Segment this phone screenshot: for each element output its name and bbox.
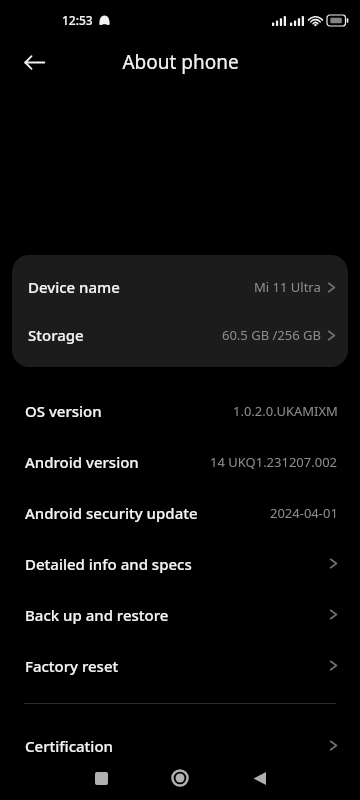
button[interactable]: Android version bbox=[0, 436, 360, 487]
staticText: 12:53 bbox=[62, 12, 93, 28]
button[interactable]: Detailed info and specs bbox=[0, 538, 360, 589]
button[interactable]: Android security update bbox=[0, 487, 360, 538]
staticText: Storage bbox=[28, 325, 84, 345]
button[interactable]: Factory reset bbox=[0, 640, 360, 691]
button[interactable]: Recents bbox=[71, 756, 131, 800]
button[interactable]: Back bbox=[229, 756, 289, 800]
staticText: Android security update bbox=[25, 503, 198, 523]
staticText: About phone bbox=[122, 49, 239, 75]
button[interactable]: OS version bbox=[0, 385, 360, 436]
button[interactable]: Home bbox=[150, 756, 210, 800]
button[interactable]: Back bbox=[12, 40, 56, 84]
staticText: Detailed info and specs bbox=[25, 554, 192, 574]
button[interactable]: Device name bbox=[12, 263, 348, 311]
staticText: Device name bbox=[28, 277, 120, 297]
staticText: 1.0.2.0.UKAMIXM bbox=[233, 402, 338, 420]
staticText: OS version bbox=[25, 401, 102, 421]
staticText: 14 UKQ1.231207.002 bbox=[210, 453, 338, 471]
staticText: Android version bbox=[25, 452, 139, 472]
staticText: 2024-04-01 bbox=[270, 504, 338, 522]
button[interactable]: Certification bbox=[0, 720, 360, 771]
staticText: Mi 11 Ultra bbox=[254, 278, 321, 296]
button[interactable]: Storage bbox=[12, 311, 348, 359]
staticText: Factory reset bbox=[25, 656, 119, 676]
staticText: Back up and restore bbox=[25, 605, 169, 625]
button[interactable]: Back up and restore bbox=[0, 589, 360, 640]
staticText: 60.5 GB /256 GB bbox=[222, 326, 321, 344]
staticText: Certification bbox=[25, 736, 113, 756]
